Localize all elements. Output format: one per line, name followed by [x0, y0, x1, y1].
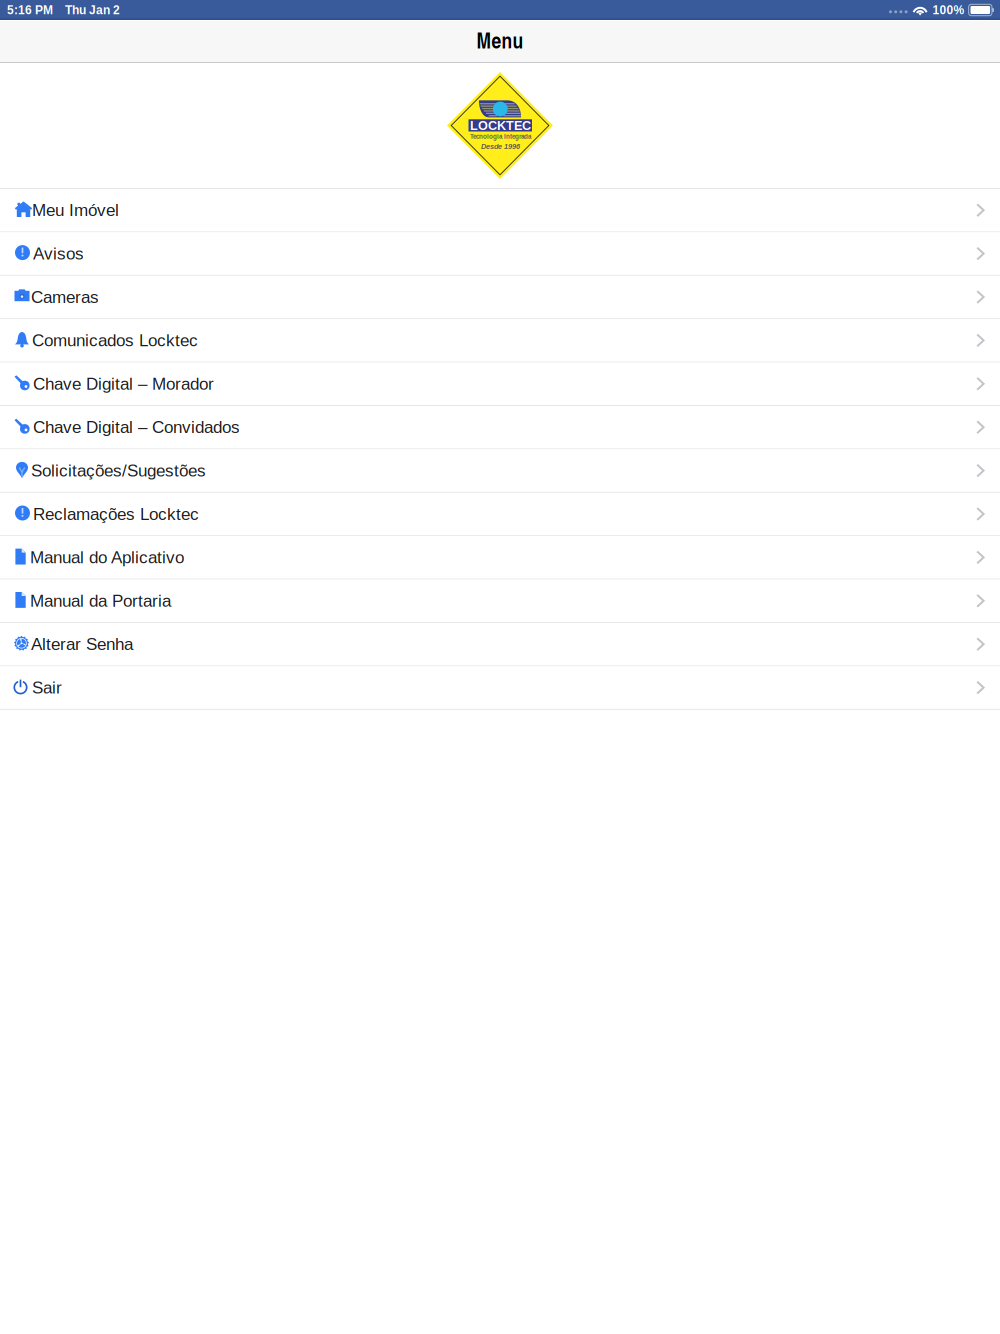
staticText: Sair [32, 678, 62, 697]
button[interactable]: Comunicados Locktec [0, 319, 1000, 363]
button[interactable]: Meu Imóvel [0, 189, 1000, 232]
button[interactable]: Cameras [0, 276, 1000, 319]
staticText: LOCKTEC [470, 118, 531, 133]
staticText: 100% [933, 3, 965, 17]
staticText: Tecnologia Integrada [470, 133, 531, 140]
staticText: Avisos [33, 244, 84, 263]
staticText: Reclamações Locktec [33, 504, 199, 524]
staticText: Thu Jan 2 [65, 3, 120, 17]
button[interactable]: Reclamações Locktec [0, 493, 1000, 536]
staticText: Meu Imóvel [32, 201, 119, 220]
button[interactable]: Sair [0, 666, 1000, 710]
button[interactable]: Chave Digital – Morador [0, 363, 1000, 406]
button[interactable]: Avisos [0, 232, 1000, 276]
staticText: Alterar Senha [31, 635, 133, 654]
button[interactable]: Solicitações/Sugestões [0, 449, 1000, 493]
staticText: Menu [476, 25, 523, 55]
staticText: Manual da Portaria [30, 591, 171, 610]
staticText: Chave Digital – Morador [33, 374, 214, 393]
button[interactable]: Chave Digital – Convidados [0, 406, 1000, 449]
button[interactable]: Manual da Portaria [0, 580, 1000, 623]
staticText: Manual do Aplicativo [30, 548, 184, 567]
staticText: 5:16 PM [7, 3, 53, 17]
staticText: Desde 1996 [481, 142, 520, 151]
button[interactable]: Manual do Aplicativo [0, 536, 1000, 580]
staticText: Cameras [31, 287, 99, 307]
staticText: Comunicados Locktec [32, 331, 198, 350]
staticText: Chave Digital – Convidados [33, 418, 240, 437]
button[interactable]: Alterar Senha [0, 623, 1000, 666]
staticText: Solicitações/Sugestões [31, 461, 206, 480]
